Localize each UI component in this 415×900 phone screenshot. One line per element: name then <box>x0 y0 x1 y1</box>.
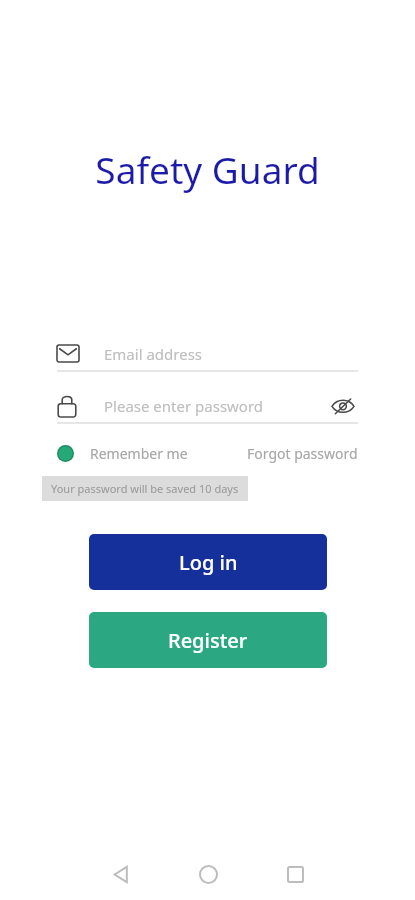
staticText: Log in <box>179 549 238 576</box>
button[interactable]: Back <box>90 848 152 900</box>
button[interactable]: Home <box>177 848 239 900</box>
staticText: Email address <box>104 344 203 364</box>
button[interactable]: Email address <box>57 337 358 370</box>
button[interactable]: Forgot password <box>247 444 358 463</box>
staticText: Register <box>168 627 248 654</box>
button[interactable]: Show password <box>328 391 358 421</box>
staticText: Safety Guard <box>95 144 320 194</box>
button[interactable]: Register <box>89 612 327 668</box>
staticText: Please enter password <box>104 396 328 416</box>
button[interactable]: Remember me <box>57 444 188 463</box>
button[interactable]: Log in <box>89 534 327 590</box>
button[interactable]: Recent apps <box>264 848 326 900</box>
staticText: Your password will be saved 10 days <box>51 481 239 496</box>
staticText: Remember me <box>90 444 188 463</box>
button[interactable]: Please enter password <box>57 389 358 422</box>
staticText: Forgot password <box>247 444 358 463</box>
